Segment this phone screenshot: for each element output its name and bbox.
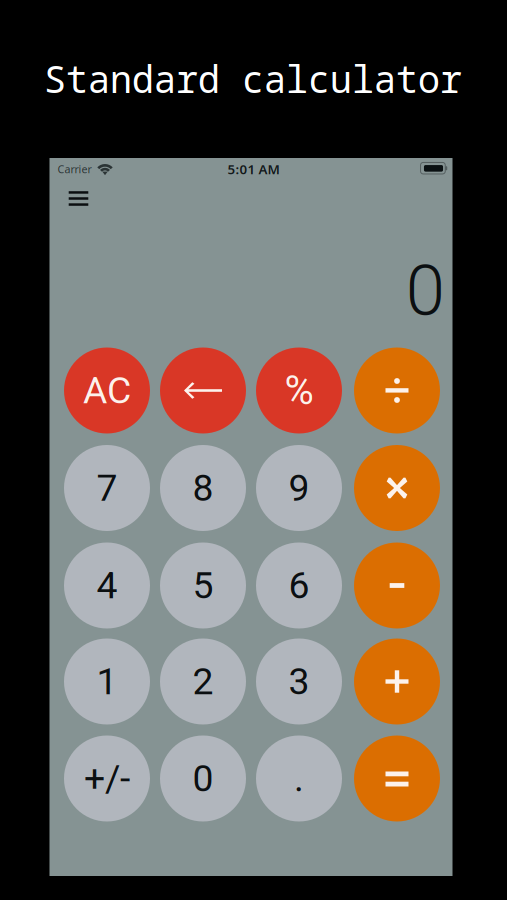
- button[interactable]: 8: [160, 445, 246, 531]
- button[interactable]: Equals: [354, 735, 440, 821]
- button[interactable]: 2: [160, 638, 246, 724]
- staticText: 4: [96, 564, 117, 607]
- button[interactable]: 7: [64, 445, 150, 531]
- staticText: +/-: [84, 757, 130, 800]
- staticText: 6: [288, 564, 309, 607]
- button[interactable]: Menu: [58, 180, 99, 217]
- staticText: Carrier: [57, 162, 91, 176]
- button[interactable]: %: [256, 347, 342, 433]
- button[interactable]: 0: [160, 735, 246, 821]
- button[interactable]: 6: [256, 542, 342, 628]
- button[interactable]: 1: [64, 638, 150, 724]
- staticText: 9: [288, 466, 309, 510]
- staticText: 1: [96, 660, 117, 703]
- button[interactable]: Minus: [354, 542, 440, 628]
- button[interactable]: 4: [64, 542, 150, 628]
- button[interactable]: AC: [64, 347, 150, 433]
- staticText: 5: [192, 564, 213, 607]
- button[interactable]: .: [256, 735, 342, 821]
- staticText: AC: [83, 369, 131, 412]
- button[interactable]: 3: [256, 638, 342, 724]
- staticText: 3: [288, 660, 309, 703]
- button[interactable]: Plus: [354, 638, 440, 724]
- staticText: 0: [406, 249, 445, 332]
- button[interactable]: 5: [160, 542, 246, 628]
- staticText: 2: [192, 660, 213, 703]
- staticText: 8: [192, 466, 213, 510]
- staticText: %: [284, 367, 313, 414]
- button[interactable]: Multiply: [354, 445, 440, 531]
- button[interactable]: +/-: [64, 735, 150, 821]
- staticText: 7: [96, 466, 117, 510]
- button[interactable]: Backspace: [160, 347, 246, 433]
- button[interactable]: 9: [256, 445, 342, 531]
- staticText: 5:01 AM: [227, 160, 279, 178]
- staticText: Standard calculator: [44, 53, 462, 104]
- staticText: 0: [192, 757, 213, 800]
- staticText: .: [294, 757, 304, 800]
- button[interactable]: Divide: [354, 347, 440, 433]
